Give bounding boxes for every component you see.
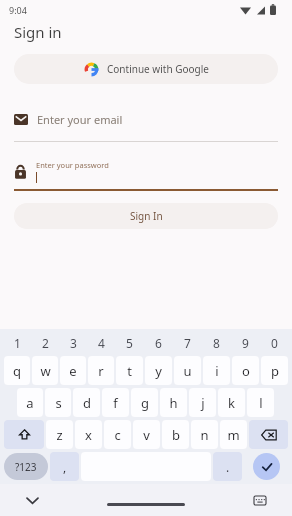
staticText: Continue with Google [107, 62, 209, 76]
staticText: Enter your password [36, 160, 109, 170]
button[interactable]: i [203, 356, 230, 385]
staticText: 0 [271, 335, 278, 351]
staticText: x [85, 426, 92, 444]
button[interactable]: h [160, 388, 187, 417]
staticText: z [56, 426, 63, 444]
button[interactable]: o [232, 356, 259, 385]
staticText: 7 [184, 335, 191, 351]
button[interactable]: 8 [202, 332, 231, 354]
button[interactable]: f [102, 388, 129, 417]
button[interactable]: n [191, 420, 218, 449]
staticText: 9:04 [9, 4, 27, 16]
staticText: . [226, 459, 230, 475]
staticText: e [69, 362, 77, 380]
button[interactable]: . [213, 452, 242, 481]
staticText: m [227, 426, 240, 444]
button[interactable]: 9 [231, 332, 260, 354]
staticText: j [201, 394, 205, 412]
staticText: Enter your email [37, 112, 123, 127]
staticText: s [55, 394, 62, 412]
button[interactable]: v [133, 420, 160, 449]
button[interactable]: 0 [260, 332, 289, 354]
button[interactable]: 4 [87, 332, 115, 354]
staticText: t [127, 362, 132, 380]
button[interactable]: l [247, 388, 274, 417]
staticText: c [114, 426, 121, 444]
staticText: a [26, 394, 34, 412]
button[interactable]: Enter your email [14, 106, 278, 142]
button[interactable]: t [116, 356, 143, 385]
staticText: f [113, 394, 118, 412]
staticText: w [40, 362, 51, 380]
button[interactable]: 7 [173, 332, 202, 354]
staticText: , [63, 459, 67, 475]
staticText: n [200, 426, 209, 444]
staticText: 1 [14, 335, 21, 351]
button[interactable]: r [88, 356, 114, 385]
button[interactable]: x [75, 420, 102, 449]
staticText: Sign in [14, 22, 62, 42]
staticText: o [242, 362, 250, 380]
button[interactable]: 6 [144, 332, 173, 354]
button[interactable]: 2 [31, 332, 59, 354]
staticText: Sign In [130, 209, 163, 223]
button[interactable]: 3 [59, 332, 87, 354]
button[interactable]: q [4, 356, 30, 385]
button[interactable]: m [220, 420, 247, 449]
button[interactable]: k [218, 388, 245, 417]
button[interactable]: j [189, 388, 216, 417]
button[interactable]: g [131, 388, 158, 417]
button[interactable]: Enter [244, 450, 288, 482]
staticText: ?123 [15, 460, 37, 474]
button[interactable]: Backspace [249, 420, 288, 449]
staticText: h [169, 394, 178, 412]
button[interactable]: y [145, 356, 172, 385]
button[interactable]: 1 [3, 332, 31, 354]
staticText: v [143, 426, 150, 444]
staticText: l [259, 394, 263, 412]
button[interactable]: b [162, 420, 189, 449]
staticText: u [183, 362, 192, 380]
staticText: k [228, 394, 235, 412]
button[interactable]: z [46, 420, 73, 449]
button[interactable]: ?123 [4, 453, 48, 480]
button[interactable]: u [174, 356, 201, 385]
button[interactable]: Enter your password [14, 156, 278, 191]
staticText: q [13, 362, 21, 380]
button[interactable]: d [73, 388, 100, 417]
button[interactable]: e [60, 356, 86, 385]
button[interactable]: Shift [4, 420, 44, 449]
staticText: p [271, 362, 279, 380]
button[interactable]: Hide keyboard [22, 490, 42, 510]
staticText: d [83, 394, 91, 412]
button[interactable]: w [32, 356, 58, 385]
button[interactable]: Switch keyboard [250, 490, 270, 510]
button[interactable]: s [45, 388, 71, 417]
button[interactable]: 5 [115, 332, 144, 354]
button[interactable]: Sign In [14, 203, 278, 229]
button[interactable]: p [261, 356, 288, 385]
staticText: 6 [155, 335, 162, 351]
staticText: 9 [242, 335, 249, 351]
button[interactable]: Continue with Google [14, 54, 278, 84]
staticText: 4 [98, 335, 105, 351]
staticText: 8 [213, 335, 220, 351]
staticText: b [172, 426, 180, 444]
staticText: g [141, 394, 149, 412]
staticText: 3 [70, 335, 77, 351]
staticText: 2 [42, 335, 49, 351]
button[interactable]: a [17, 388, 43, 417]
staticText: i [215, 362, 219, 380]
staticText: 5 [126, 335, 133, 351]
staticText: y [155, 362, 162, 380]
button[interactable]: c [104, 420, 131, 449]
staticText: r [98, 362, 104, 380]
button[interactable]: , [50, 452, 79, 481]
